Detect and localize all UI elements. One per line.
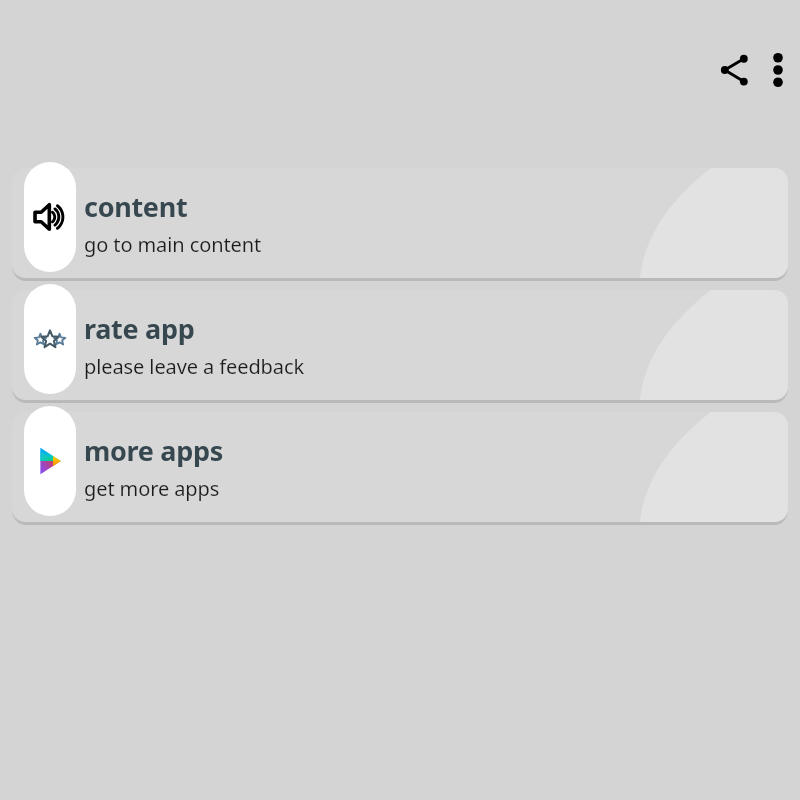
- staticText: get more apps: [84, 475, 220, 502]
- button[interactable]: More options: [757, 45, 799, 95]
- staticText: content: [84, 188, 188, 225]
- button[interactable]: rate app: [12, 290, 788, 400]
- staticText: please leave a feedback: [84, 353, 304, 380]
- button[interactable]: more apps: [12, 412, 788, 522]
- staticText: rate app: [84, 310, 195, 347]
- staticText: more apps: [84, 432, 224, 469]
- button[interactable]: Share: [710, 45, 760, 95]
- staticText: go to main content: [84, 231, 262, 258]
- button[interactable]: content: [12, 168, 788, 278]
